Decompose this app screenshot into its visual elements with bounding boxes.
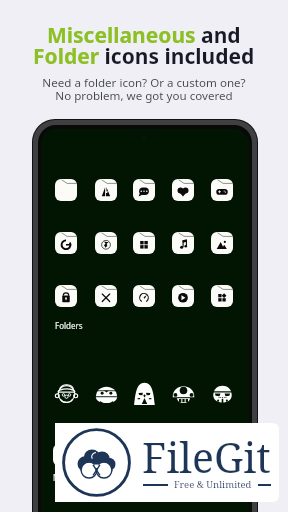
button[interactable]: Mushroom (172, 382, 195, 405)
button[interactable]: Google (55, 232, 77, 254)
button[interactable]: Video (172, 285, 194, 307)
button[interactable]: Misc icon (53, 444, 75, 466)
button[interactable]: Misc icon (93, 444, 115, 466)
button[interactable]: Windows (133, 232, 155, 254)
button[interactable]: Turtle (95, 382, 118, 405)
button[interactable]: Misc icon (170, 444, 192, 466)
button[interactable]: Mario (55, 382, 78, 405)
staticText: Miscellaneous (53, 472, 107, 483)
button[interactable]: Messages (133, 179, 155, 201)
button[interactable]: Games (211, 179, 233, 201)
button[interactable]: Favourites (172, 179, 194, 201)
staticText: Free & Unlimited (174, 478, 252, 491)
staticText: Folders (55, 320, 83, 331)
staticText: Miscellaneous and (47, 21, 241, 50)
staticText: Need a folder icon? Or a custom one? (42, 75, 246, 91)
button[interactable]: Trooper (211, 382, 234, 405)
button[interactable]: Adobe (95, 179, 117, 201)
staticText: FileGit (142, 429, 271, 485)
button[interactable]: Photos (211, 232, 233, 254)
button[interactable]: Close (95, 285, 117, 307)
staticText: Folder icons included (33, 42, 255, 71)
button[interactable]: Misc icon (209, 444, 231, 466)
button[interactable]: Secure (55, 285, 77, 307)
button[interactable]: Internet (95, 232, 117, 254)
button[interactable]: Vader (133, 382, 156, 405)
button[interactable]: Speed (133, 285, 155, 307)
other: FileGit logo (62, 428, 131, 497)
button[interactable]: Folder (55, 179, 77, 201)
button[interactable]: Widgets (211, 285, 233, 307)
staticText: No problem, we got you covered (55, 88, 233, 104)
button[interactable]: Music (172, 232, 194, 254)
button[interactable]: FileGit logo (55, 423, 279, 502)
button[interactable]: Misc icon (131, 444, 153, 466)
